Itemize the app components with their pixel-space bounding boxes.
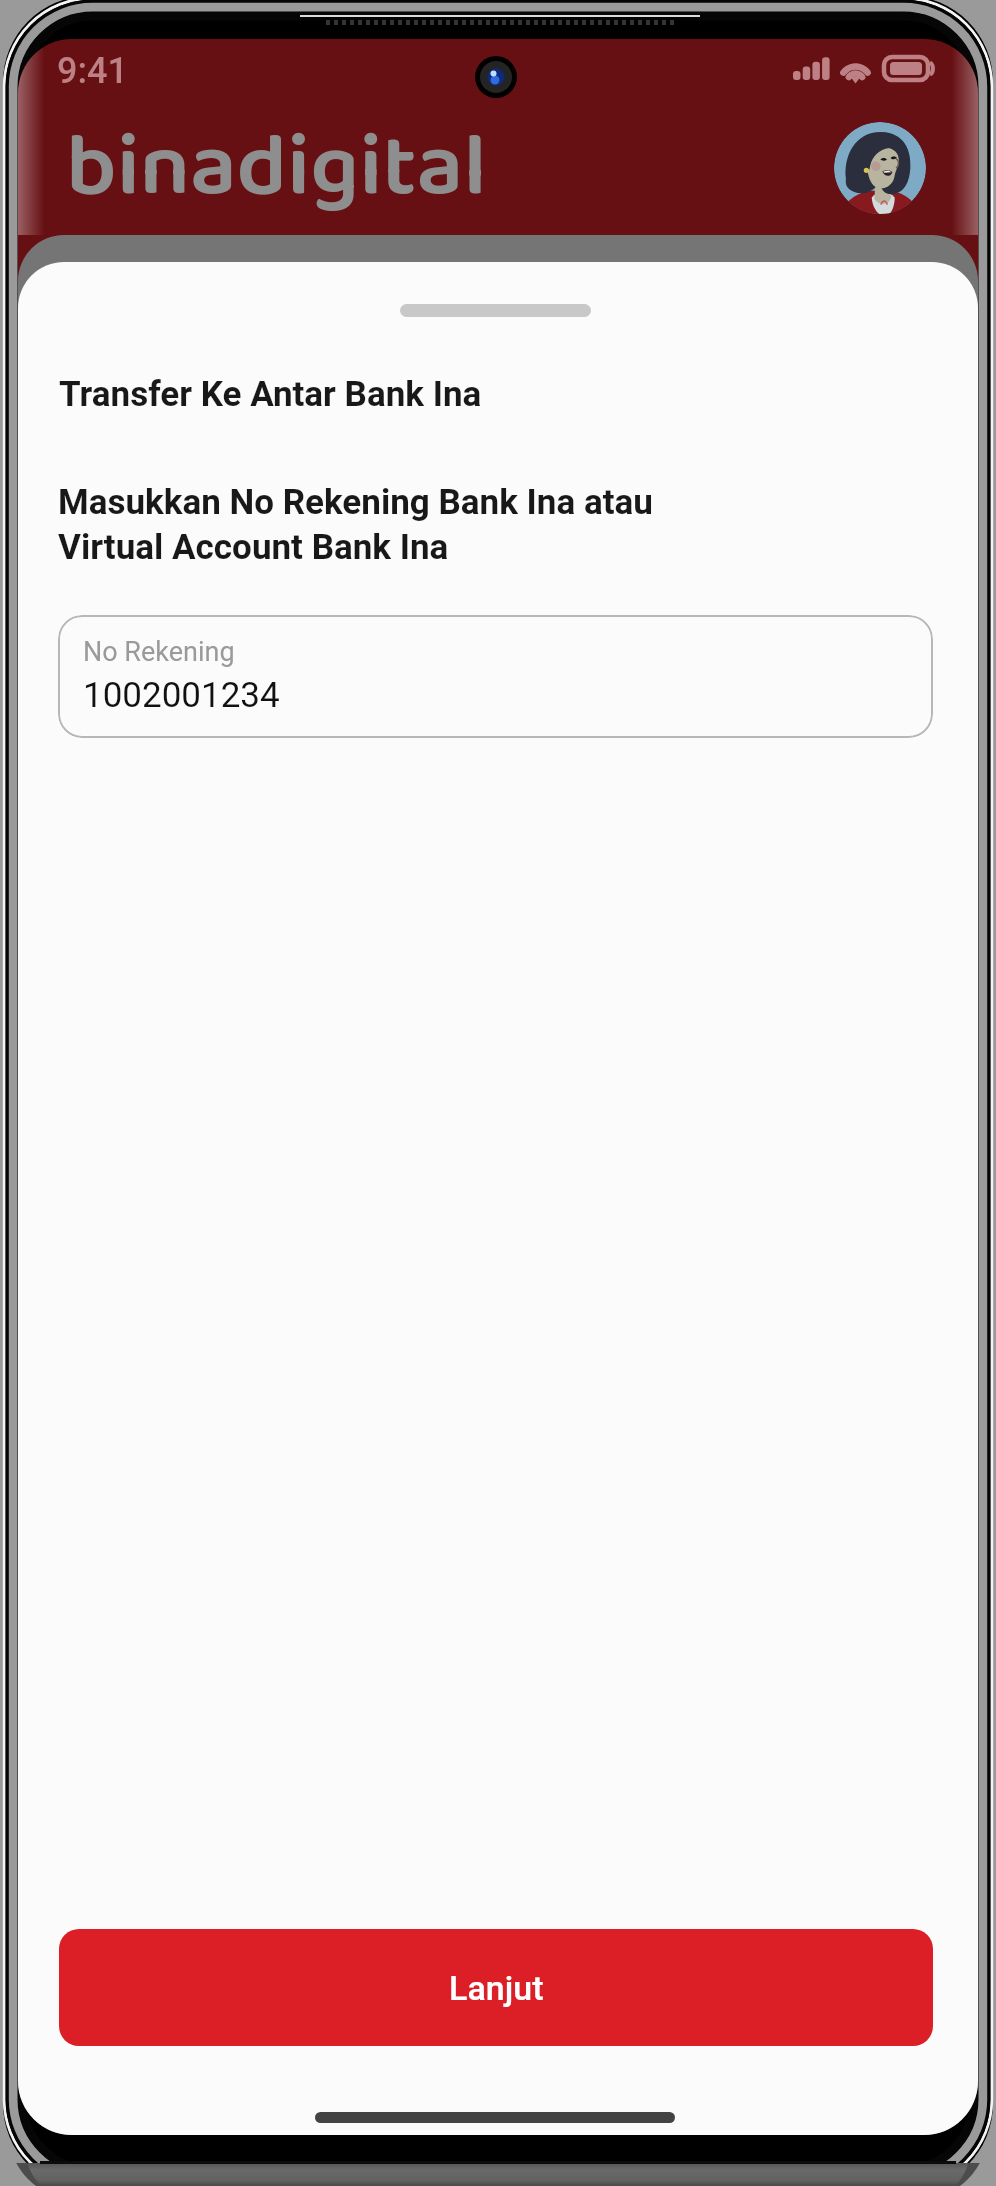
button[interactable]: No Rekening: [58, 615, 933, 738]
staticText: Masukkan No Rekening Bank Ina atau Virtu…: [58, 482, 653, 567]
staticText: 9:41: [57, 50, 128, 92]
staticText: Transfer Ke Antar Bank Ina: [59, 374, 482, 415]
button[interactable]: Lanjut: [59, 1929, 933, 2046]
staticText: No Rekening: [83, 636, 235, 668]
staticText: Lanjut: [449, 1968, 544, 2008]
button[interactable]: Profile: [834, 122, 926, 214]
staticText: binadigital: [66, 97, 487, 240]
staticText: 1002001234: [83, 675, 280, 716]
